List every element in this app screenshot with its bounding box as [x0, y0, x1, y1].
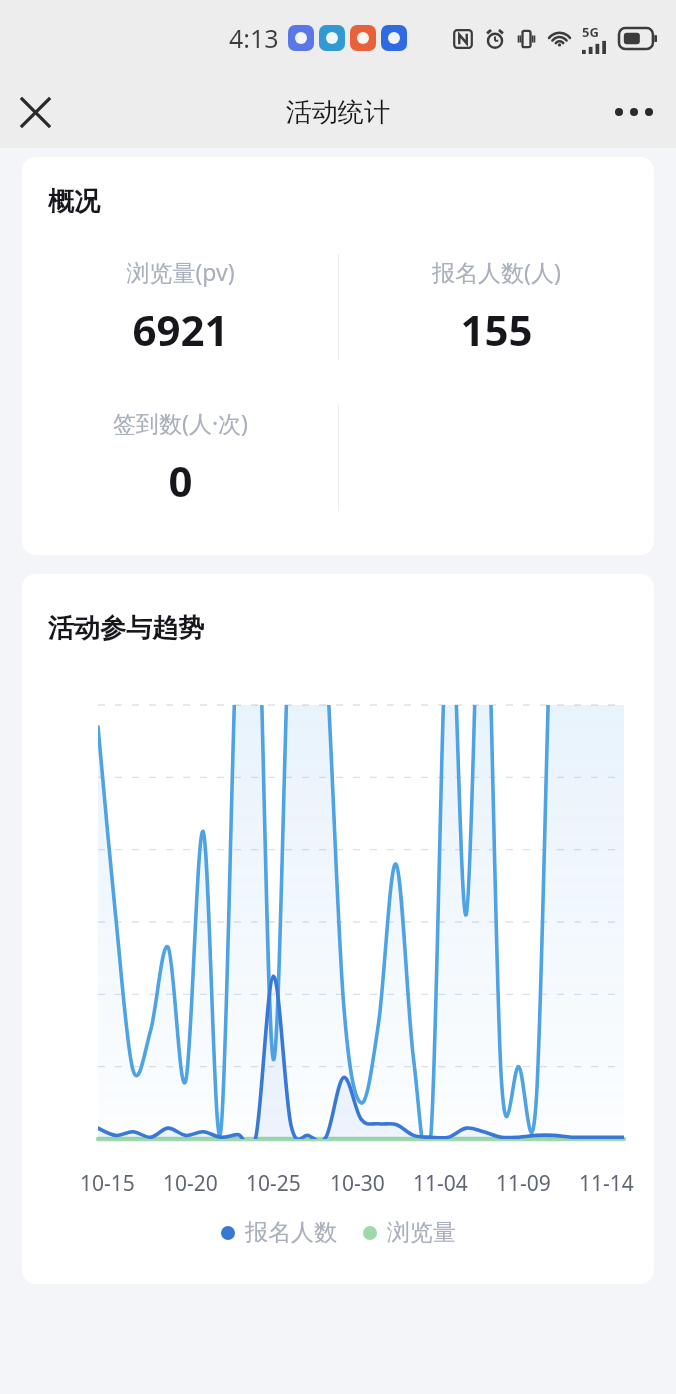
staticText: 浏览量(pv): [126, 256, 235, 287]
staticText: 活动统计: [286, 96, 390, 129]
staticText: 4:13: [229, 21, 279, 55]
staticText: 签到数(人·次): [113, 407, 248, 438]
button[interactable]: Close: [8, 85, 62, 139]
staticText: 10-15: [80, 1169, 135, 1198]
staticText: 概况: [48, 185, 100, 218]
staticText: 0: [168, 452, 193, 509]
staticText: 报名人数(人): [432, 256, 561, 287]
button[interactable]: More options: [606, 84, 662, 140]
staticText: 11-14: [579, 1169, 634, 1198]
staticText: 11-04: [413, 1169, 468, 1198]
staticText: 5G: [582, 23, 599, 41]
staticText: 浏览量: [387, 1218, 456, 1247]
staticText: 10-30: [330, 1169, 385, 1198]
staticText: 活动参与趋势: [48, 612, 204, 645]
button[interactable]: 活动参与趋势: [22, 574, 654, 1284]
staticText: 11-09: [496, 1169, 551, 1198]
staticText: 10-25: [246, 1169, 301, 1198]
button[interactable]: 概况: [22, 157, 654, 555]
staticText: 6921: [132, 301, 229, 358]
staticText: 155: [460, 301, 533, 358]
staticText: 报名人数: [245, 1218, 337, 1247]
staticText: 10-20: [163, 1169, 218, 1198]
